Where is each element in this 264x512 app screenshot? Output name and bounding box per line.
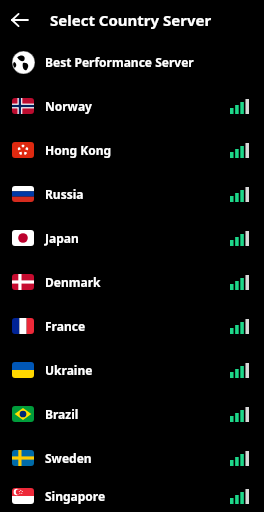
button[interactable]: Back — [0, 0, 40, 40]
staticText: Denmark — [45, 274, 101, 290]
button[interactable]: Hong Kong — [0, 128, 264, 172]
staticText: Sweden — [45, 450, 92, 466]
staticText: France — [45, 318, 86, 334]
button[interactable]: Denmark — [0, 260, 264, 304]
button[interactable]: Brazil — [0, 392, 264, 436]
button[interactable]: Russia — [0, 172, 264, 216]
staticText: Norway — [45, 98, 92, 114]
staticText: Brazil — [45, 406, 79, 422]
staticText: Hong Kong — [45, 142, 112, 158]
button[interactable]: Singapore — [0, 480, 264, 512]
button[interactable]: Ukraine — [0, 348, 264, 392]
staticText: Singapore — [45, 488, 106, 504]
staticText: Best Performance Server — [45, 54, 194, 70]
button[interactable]: Sweden — [0, 436, 264, 480]
staticText: Select Country Server — [50, 10, 212, 30]
staticText: Japan — [45, 230, 79, 246]
button[interactable]: Japan — [0, 216, 264, 260]
button[interactable]: France — [0, 304, 264, 348]
button[interactable]: Best Performance Server — [0, 40, 264, 84]
button[interactable]: Norway — [0, 84, 264, 128]
staticText: Russia — [45, 186, 84, 202]
staticText: Ukraine — [45, 362, 93, 378]
